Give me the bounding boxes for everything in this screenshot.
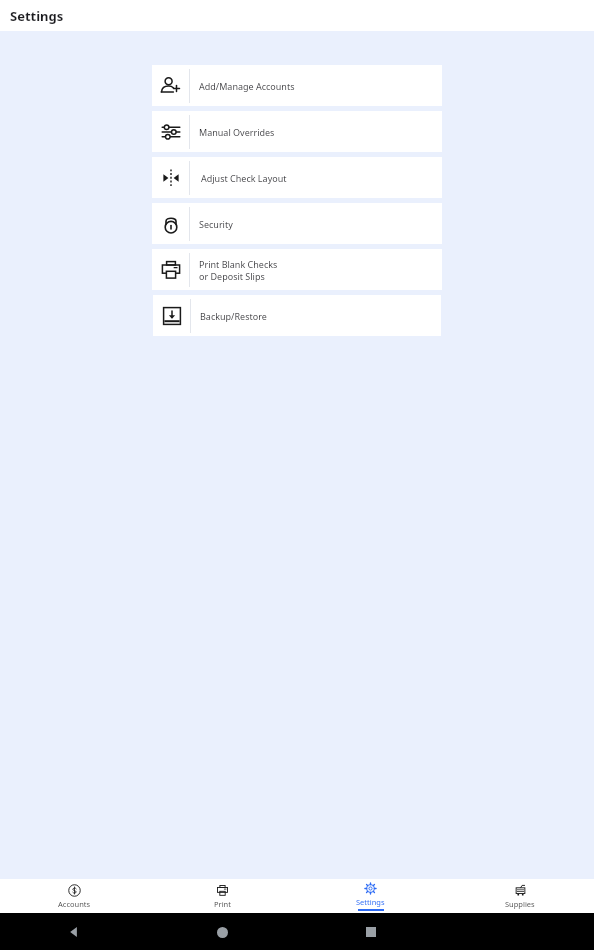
staticText: Print xyxy=(214,899,231,909)
staticText: Print Blank Checks xyxy=(199,258,278,270)
staticText: Settings xyxy=(10,7,64,25)
button[interactable]: Print blank checks or deposit slips xyxy=(152,249,442,290)
staticText: Backup/Restore xyxy=(200,310,267,322)
staticText: Manual Overrides xyxy=(199,126,275,138)
button[interactable]: Settings xyxy=(296,879,445,913)
button[interactable]: Manual overrides xyxy=(152,111,442,152)
button[interactable]: Back xyxy=(62,920,86,944)
button[interactable]: Supplies xyxy=(445,879,594,913)
button[interactable]: Recent apps xyxy=(359,920,383,944)
staticText: Adjust Check Layout xyxy=(201,172,287,184)
button[interactable]: Adjust check layout xyxy=(152,157,442,198)
button[interactable]: Accounts xyxy=(0,879,148,913)
button[interactable]: Security xyxy=(152,203,442,244)
button[interactable]: Add or manage accounts xyxy=(152,65,442,106)
button[interactable]: Print xyxy=(148,879,296,913)
staticText: Settings xyxy=(356,897,385,907)
button[interactable]: Backup or restore xyxy=(153,295,441,336)
staticText: Supplies xyxy=(505,899,535,909)
staticText: or Deposit Slips xyxy=(199,270,265,282)
staticText: Security xyxy=(199,218,233,230)
staticText: Accounts xyxy=(58,899,91,909)
button[interactable]: Home xyxy=(210,920,234,944)
staticText: Add/Manage Accounts xyxy=(199,80,295,92)
